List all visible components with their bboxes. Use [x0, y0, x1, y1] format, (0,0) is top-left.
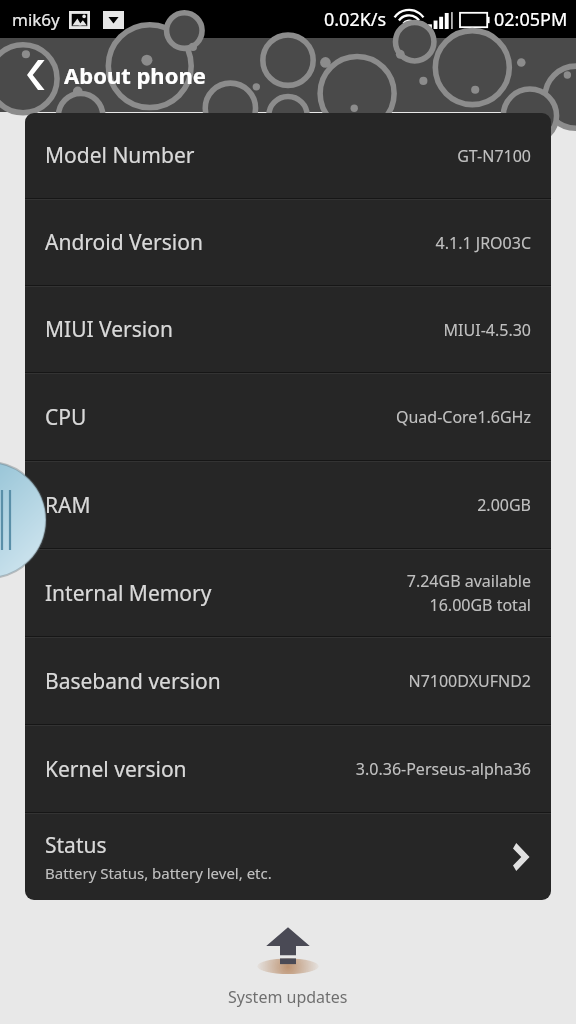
button[interactable]: Back	[14, 51, 62, 99]
button[interactable]: RAM	[25, 462, 551, 548]
staticText: CPU	[45, 403, 87, 432]
button[interactable]: System updates	[0, 900, 576, 1024]
staticText: mik6y	[12, 8, 60, 31]
staticText: MIUI Version	[45, 315, 173, 344]
staticText: Android Version	[45, 228, 203, 257]
staticText: N7100DXUFND2	[408, 670, 531, 692]
staticText: RAM	[45, 491, 91, 520]
button[interactable]: CPU	[25, 374, 551, 460]
staticText: Quad-Core1.6GHz	[395, 406, 531, 428]
staticText: 2.00GB	[477, 494, 531, 516]
button[interactable]: Status	[25, 814, 551, 900]
staticText: GT-N7100	[457, 145, 531, 167]
button[interactable]: Android Version	[25, 200, 551, 285]
staticText: System updates	[228, 986, 348, 1008]
staticText: 16.00GB total	[429, 594, 531, 616]
staticText: 3.0.36-Perseus-alpha36	[355, 758, 531, 780]
button[interactable]: MIUI Version	[25, 287, 551, 372]
staticText: Status	[45, 831, 107, 860]
staticText: Baseband version	[45, 667, 221, 696]
button[interactable]: Model Number	[25, 113, 551, 198]
button[interactable]: Baseband version	[25, 638, 551, 724]
button[interactable]: Internal Memory	[25, 550, 551, 636]
staticText: 7.24GB available	[406, 570, 531, 592]
staticText: MIUI-4.5.30	[443, 319, 531, 341]
staticText: 0.02K/s	[324, 7, 387, 32]
staticText: Model Number	[45, 141, 195, 170]
staticText: 4.1.1 JRO03C	[435, 232, 531, 254]
staticText: Kernel version	[45, 755, 187, 784]
button[interactable]: Kernel version	[25, 726, 551, 812]
staticText: Internal Memory	[45, 579, 212, 608]
staticText: About phone	[64, 60, 206, 90]
staticText: Battery Status, battery level, etc.	[45, 863, 272, 883]
staticText: 02:05PM	[494, 7, 568, 32]
